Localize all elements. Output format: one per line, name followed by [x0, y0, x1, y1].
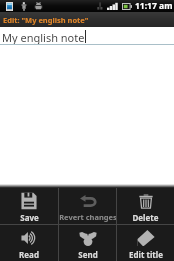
button[interactable]: Edit title	[117, 225, 174, 261]
staticText: Save	[20, 212, 39, 223]
staticText: Send	[78, 249, 98, 260]
staticText: Edit title	[129, 249, 163, 260]
button[interactable]: Send	[59, 225, 116, 261]
staticText: 11:17 am	[135, 0, 173, 12]
staticText: My english note	[2, 30, 85, 45]
button[interactable]: Delete	[117, 188, 174, 224]
staticText: Delete	[132, 212, 159, 223]
button[interactable]: Revert changes	[59, 188, 116, 224]
staticText: Revert changes	[59, 212, 116, 222]
button[interactable]: Save	[0, 188, 58, 224]
staticText: Read	[19, 249, 39, 260]
button[interactable]: Read	[0, 225, 58, 261]
staticText: Edit: "My english note"	[3, 15, 89, 25]
